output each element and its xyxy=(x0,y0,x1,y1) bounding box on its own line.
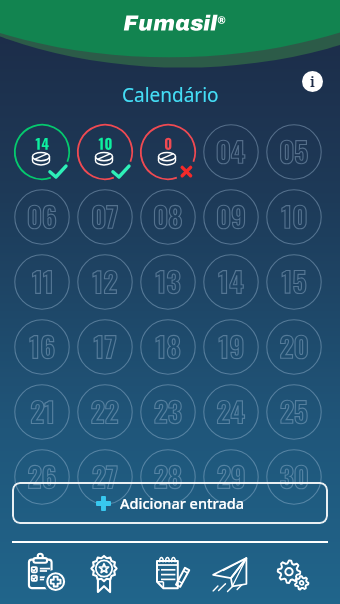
button[interactable]: Dia 23 xyxy=(140,384,196,440)
button[interactable]: Dia 15 xyxy=(266,254,322,310)
button[interactable]: Dia 10 xyxy=(77,124,133,180)
button[interactable]: Conquistas xyxy=(77,547,131,601)
button[interactable]: Dia 04 xyxy=(203,124,259,180)
button[interactable]: Dia 26 xyxy=(14,449,70,505)
button[interactable]: Dia 21 xyxy=(14,384,70,440)
button[interactable]: Dia 28 xyxy=(140,449,196,505)
button[interactable]: Dia 17 xyxy=(77,319,133,375)
button[interactable]: Configurações xyxy=(265,547,319,601)
button[interactable]: Dia 27 xyxy=(77,449,133,505)
button[interactable]: Dia 16 xyxy=(14,319,70,375)
button[interactable]: Dia 19 xyxy=(203,319,259,375)
button[interactable]: Dia 0 xyxy=(140,124,196,180)
button[interactable]: Dia 11 xyxy=(14,254,70,310)
button[interactable]: Dia 05 xyxy=(266,124,322,180)
button[interactable]: Info xyxy=(302,71,323,92)
button[interactable]: Dia 18 xyxy=(140,319,196,375)
button[interactable]: Dia 13 xyxy=(140,254,196,310)
button[interactable]: Dia 09 xyxy=(203,189,259,245)
button[interactable]: Dia 07 xyxy=(77,189,133,245)
button[interactable]: Dia 08 xyxy=(140,189,196,245)
button[interactable]: Dia 22 xyxy=(77,384,133,440)
button[interactable]: Dia 20 xyxy=(266,319,322,375)
button[interactable]: Dia 29 xyxy=(203,449,259,505)
staticText: Calendário xyxy=(122,82,219,108)
button[interactable]: Anotações xyxy=(146,546,200,600)
button[interactable]: Dia 06 xyxy=(14,189,70,245)
button[interactable]: Adicionar entrada xyxy=(12,482,328,524)
button[interactable]: Dia 14 xyxy=(14,124,70,180)
button[interactable]: Dia 24 xyxy=(203,384,259,440)
staticText: Adicionar entrada xyxy=(120,493,244,513)
button[interactable]: Dia 25 xyxy=(266,384,322,440)
button[interactable]: Enviar xyxy=(202,547,256,601)
staticText: i xyxy=(310,72,315,91)
button[interactable]: Dia 14 xyxy=(203,254,259,310)
button[interactable]: Registros xyxy=(19,545,73,599)
button[interactable]: Dia 30 xyxy=(266,449,322,505)
button[interactable]: Dia 12 xyxy=(77,254,133,310)
button[interactable]: Dia 10 xyxy=(266,189,322,245)
